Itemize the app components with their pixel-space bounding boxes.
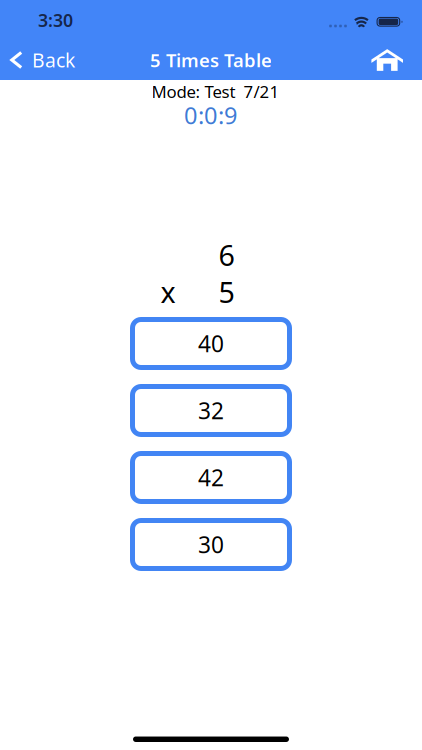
- staticText: 40: [198, 328, 224, 359]
- staticText: 42: [198, 462, 224, 493]
- staticText: Back: [32, 47, 75, 73]
- staticText: 5 Times Table: [150, 47, 272, 73]
- button[interactable]: 32: [130, 384, 292, 437]
- staticText: 6: [218, 235, 234, 274]
- button[interactable]: Back: [0, 40, 83, 80]
- button[interactable]: Home: [355, 40, 422, 80]
- button[interactable]: 30: [130, 518, 292, 571]
- staticText: 32: [198, 395, 224, 426]
- staticText: 5: [218, 272, 234, 311]
- button[interactable]: 40: [130, 317, 292, 370]
- staticText: 0:0:9: [184, 99, 238, 131]
- staticText: x: [160, 272, 175, 311]
- button[interactable]: 42: [130, 451, 292, 504]
- staticText: Mode: Test 7/21: [151, 80, 279, 103]
- staticText: 3:30: [38, 8, 73, 32]
- staticText: 30: [198, 529, 224, 560]
